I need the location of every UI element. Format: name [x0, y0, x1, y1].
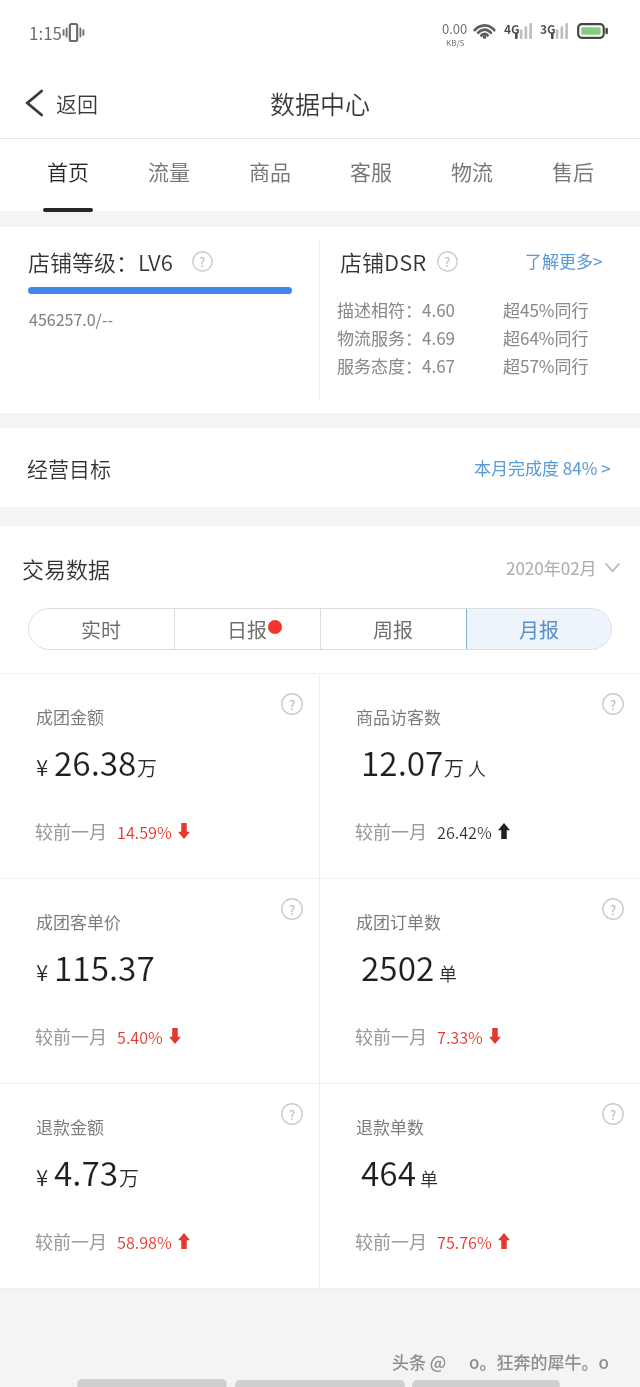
staticText: 成团金额: [36, 704, 104, 729]
staticText: KB/S: [446, 37, 465, 49]
staticText: 经营目标: [27, 453, 111, 483]
staticText: 14.59%: [117, 820, 172, 843]
staticText: 万: [137, 753, 157, 782]
button[interactable]: 退款金额: [0, 1084, 319, 1288]
staticText: 超45%同行: [503, 297, 589, 322]
staticText: 日报: [227, 615, 267, 644]
button[interactable]: 月报: [466, 608, 612, 650]
button[interactable]: 了解更多>: [525, 248, 603, 273]
staticText: 较前一月: [35, 1023, 107, 1049]
staticText: 超64%同行: [503, 325, 589, 350]
staticText: 115.37: [54, 943, 155, 991]
staticText: 成团客单价: [36, 909, 121, 934]
button[interactable]: 成团客单价: [0, 879, 319, 1083]
staticText: ?: [289, 695, 296, 714]
staticText: 交易数据: [22, 552, 111, 584]
staticText: 4.73: [54, 1148, 119, 1196]
staticText: 0.00: [442, 19, 468, 38]
staticText: 12.07: [361, 738, 444, 786]
button[interactable]: 店铺等级：LV6: [0, 227, 319, 413]
staticText: 超57%同行: [503, 353, 589, 378]
staticText: 5.40%: [117, 1025, 163, 1048]
button[interactable]: 周报: [320, 608, 466, 650]
staticText: 万: [444, 753, 464, 782]
staticText: 头条 @: [392, 1349, 447, 1374]
staticText: 单: [435, 960, 458, 986]
staticText: 7.33%: [437, 1025, 483, 1048]
staticText: 物流: [451, 156, 493, 186]
staticText: 客服: [350, 156, 392, 186]
staticText: 3G: [540, 20, 556, 37]
staticText: 退款金额: [36, 1114, 104, 1139]
staticText: o。狂奔的犀牛。o: [469, 1349, 609, 1374]
staticText: 单: [416, 1165, 439, 1191]
button[interactable]: 商品访客数: [320, 674, 640, 878]
button[interactable]: 成团金额: [0, 674, 319, 878]
button[interactable]: 2020年02月: [506, 555, 619, 580]
staticText: 商品: [249, 156, 291, 186]
staticText: ?: [444, 252, 451, 271]
staticText: 物流服务：4.69: [337, 325, 456, 350]
button[interactable]: 经营目标: [0, 428, 640, 507]
button[interactable]: 首页: [17, 139, 118, 211]
staticText: ?: [199, 252, 206, 271]
staticText: 较前一月: [355, 1228, 427, 1254]
button[interactable]: 流量: [118, 139, 219, 211]
staticText: 较前一月: [35, 818, 107, 844]
staticText: 456257.0/--: [29, 307, 113, 330]
staticText: 较前一月: [355, 818, 427, 844]
staticText: ¥: [36, 1160, 54, 1192]
button[interactable]: 实时: [28, 608, 174, 650]
staticText: 58.98%: [117, 1230, 172, 1253]
staticText: 较前一月: [355, 1023, 427, 1049]
staticText: 流量: [148, 156, 190, 186]
button[interactable]: 商品: [219, 139, 320, 211]
staticText: 退款单数: [356, 1114, 424, 1139]
staticText: ?: [289, 1105, 296, 1124]
staticText: 数据中心: [270, 85, 371, 121]
staticText: 4G: [504, 20, 520, 37]
staticText: 464: [361, 1148, 416, 1196]
button[interactable]: 物流: [421, 139, 522, 211]
staticText: 店铺等级：LV6: [28, 245, 173, 277]
staticText: ¥: [36, 955, 54, 987]
staticText: 月报: [519, 615, 559, 644]
staticText: 较前一月: [35, 1228, 107, 1254]
staticText: 服务态度：4.67: [337, 353, 456, 378]
staticText: 周报: [373, 615, 413, 644]
staticText: ?: [610, 695, 617, 714]
button[interactable]: 返回: [0, 76, 116, 130]
staticText: 26.38: [54, 738, 137, 786]
staticText: 实时: [81, 615, 121, 644]
staticText: 26.42%: [437, 820, 492, 843]
button[interactable]: 售后: [522, 139, 623, 211]
staticText: 75.76%: [437, 1230, 492, 1253]
staticText: 万: [119, 1163, 139, 1192]
button[interactable]: 退款单数: [320, 1084, 640, 1288]
staticText: 本月完成度 84% >: [474, 455, 611, 480]
staticText: ?: [610, 1105, 617, 1124]
staticText: 售后: [552, 156, 594, 186]
staticText: 2020年02月: [506, 555, 597, 580]
staticText: ¥: [36, 750, 54, 782]
button[interactable]: 日报: [174, 608, 320, 650]
staticText: 描述相符：4.60: [337, 297, 456, 322]
staticText: ?: [610, 900, 617, 919]
staticText: 成团订单数: [356, 909, 441, 934]
staticText: 1:15: [29, 20, 63, 45]
staticText: 首页: [47, 156, 89, 186]
staticText: 人: [464, 755, 487, 781]
staticText: 2502: [361, 943, 435, 991]
button[interactable]: 成团订单数: [320, 879, 640, 1083]
button[interactable]: 客服: [320, 139, 421, 211]
staticText: ?: [289, 900, 296, 919]
staticText: 店铺DSR: [340, 245, 427, 277]
staticText: 返回: [56, 88, 98, 118]
staticText: 商品访客数: [356, 704, 441, 729]
